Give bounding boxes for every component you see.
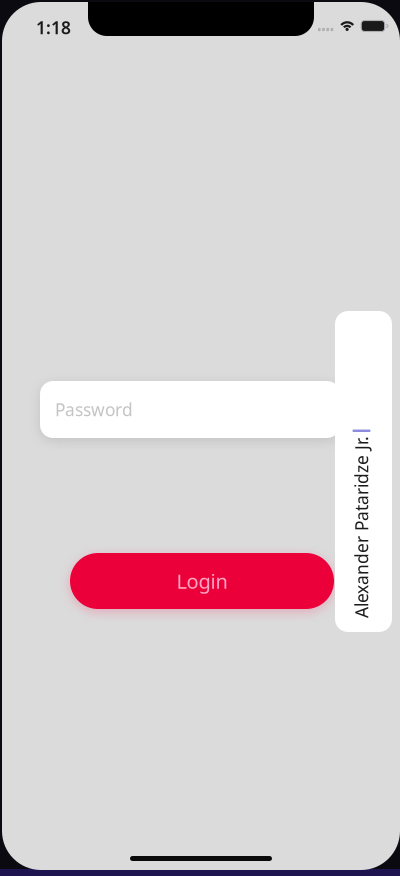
staticText: Password — [55, 398, 133, 421]
staticText: Login — [176, 568, 227, 594]
button[interactable]: Alexander Pataridze Jr. — [203, 443, 400, 500]
button[interactable]: Login — [70, 553, 334, 609]
staticText: Alexander Pataridze Jr. — [217, 458, 399, 481]
button[interactable]: Password — [40, 381, 340, 438]
staticText: 1:18 — [36, 16, 71, 39]
